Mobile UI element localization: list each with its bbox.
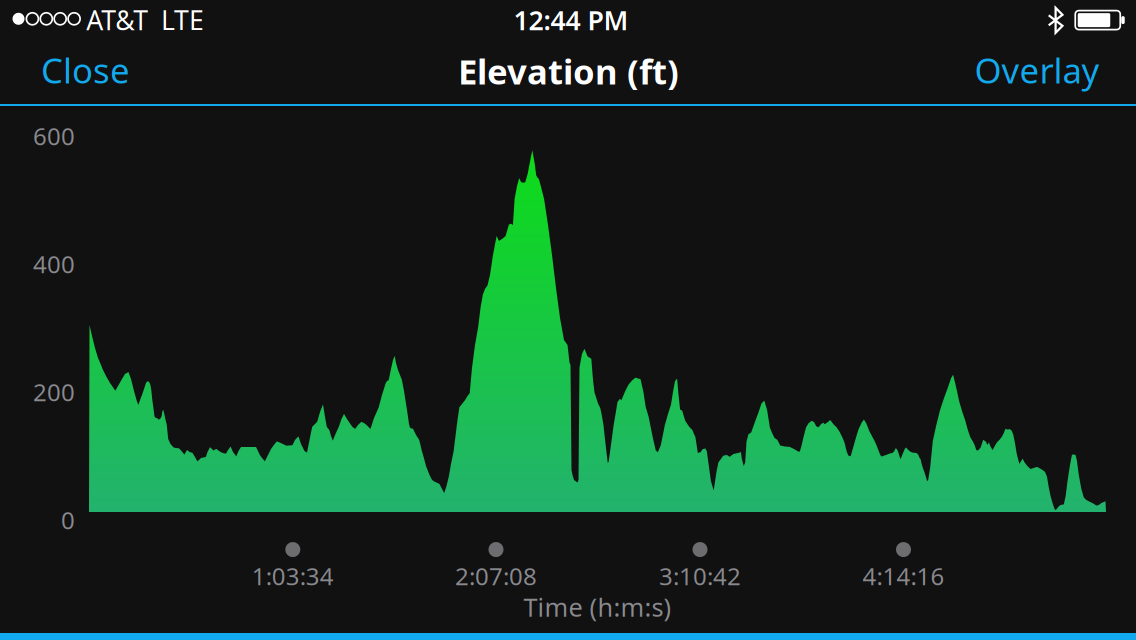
staticText: Close (41, 47, 130, 93)
staticText: Overlay (974, 47, 1099, 93)
staticText: 12:44 PM (513, 2, 628, 38)
button[interactable]: Overlay (937, 41, 1136, 99)
staticText: 4:14:16 (862, 560, 944, 592)
staticText: Elevation (ft) (458, 48, 679, 94)
staticText: AT&T (86, 2, 148, 38)
staticText: Time (h:m:s) (523, 590, 671, 624)
staticText: 2:07:08 (455, 560, 537, 592)
staticText: 3:10:42 (659, 560, 741, 592)
staticText: 1:03:34 (252, 560, 334, 592)
button[interactable]: Close (5, 41, 165, 99)
staticText: 0 (61, 504, 75, 536)
staticText: LTE (161, 2, 204, 38)
staticText: 400 (33, 248, 75, 280)
staticText: 200 (33, 376, 75, 408)
staticText: 600 (33, 120, 75, 152)
